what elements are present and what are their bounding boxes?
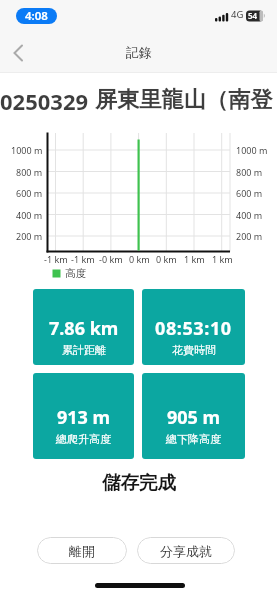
- staticText: 1 km: [212, 253, 233, 265]
- button[interactable]: 08:53:10: [142, 289, 245, 365]
- staticText: 54: [248, 10, 258, 21]
- staticText: 4:08: [25, 8, 48, 24]
- staticText: 08:53:10: [155, 316, 232, 341]
- staticText: 7.86 km: [49, 316, 119, 341]
- staticText: 200 m: [236, 230, 263, 242]
- staticText: 累計距離: [62, 343, 106, 357]
- staticText: 913 m: [57, 405, 111, 430]
- staticText: -1 km: [71, 253, 95, 265]
- staticText: 1 km: [184, 253, 205, 265]
- staticText: 400 m: [16, 209, 43, 221]
- staticText: 200 m: [16, 230, 43, 242]
- button[interactable]: 913 m: [33, 373, 134, 459]
- button[interactable]: 7.86 km: [33, 289, 134, 365]
- staticText: 高度: [65, 267, 86, 280]
- staticText: 1000 m: [236, 144, 268, 156]
- staticText: 800 m: [16, 166, 43, 178]
- staticText: 分享成就: [160, 543, 212, 559]
- button[interactable]: [10, 44, 28, 62]
- staticText: 0250329: [0, 86, 89, 112]
- staticText: 花費時間: [172, 343, 216, 357]
- staticText: 905 m: [167, 405, 221, 430]
- staticText: -0 km: [99, 253, 123, 265]
- staticText: 4G: [231, 8, 244, 21]
- staticText: 600 m: [236, 187, 263, 199]
- staticText: 總下降高度: [166, 432, 221, 446]
- staticText: 儲存完成: [102, 471, 176, 492]
- staticText: 800 m: [236, 166, 263, 178]
- staticText: 總爬升高度: [56, 432, 111, 446]
- staticText: 離開: [69, 543, 95, 559]
- staticText: 0 km: [129, 253, 150, 265]
- staticText: 600 m: [16, 187, 43, 199]
- staticText: -1 km: [44, 253, 68, 265]
- staticText: 400 m: [236, 209, 263, 221]
- button[interactable]: 905 m: [142, 373, 245, 459]
- staticText: 0 km: [156, 253, 177, 265]
- button[interactable]: 離開: [37, 537, 127, 564]
- staticText: 屏東里龍山（南登山口）: [95, 86, 277, 112]
- button[interactable]: 分享成就: [137, 537, 235, 564]
- staticText: 1000 m: [11, 144, 43, 156]
- staticText: 記錄: [126, 44, 152, 59]
